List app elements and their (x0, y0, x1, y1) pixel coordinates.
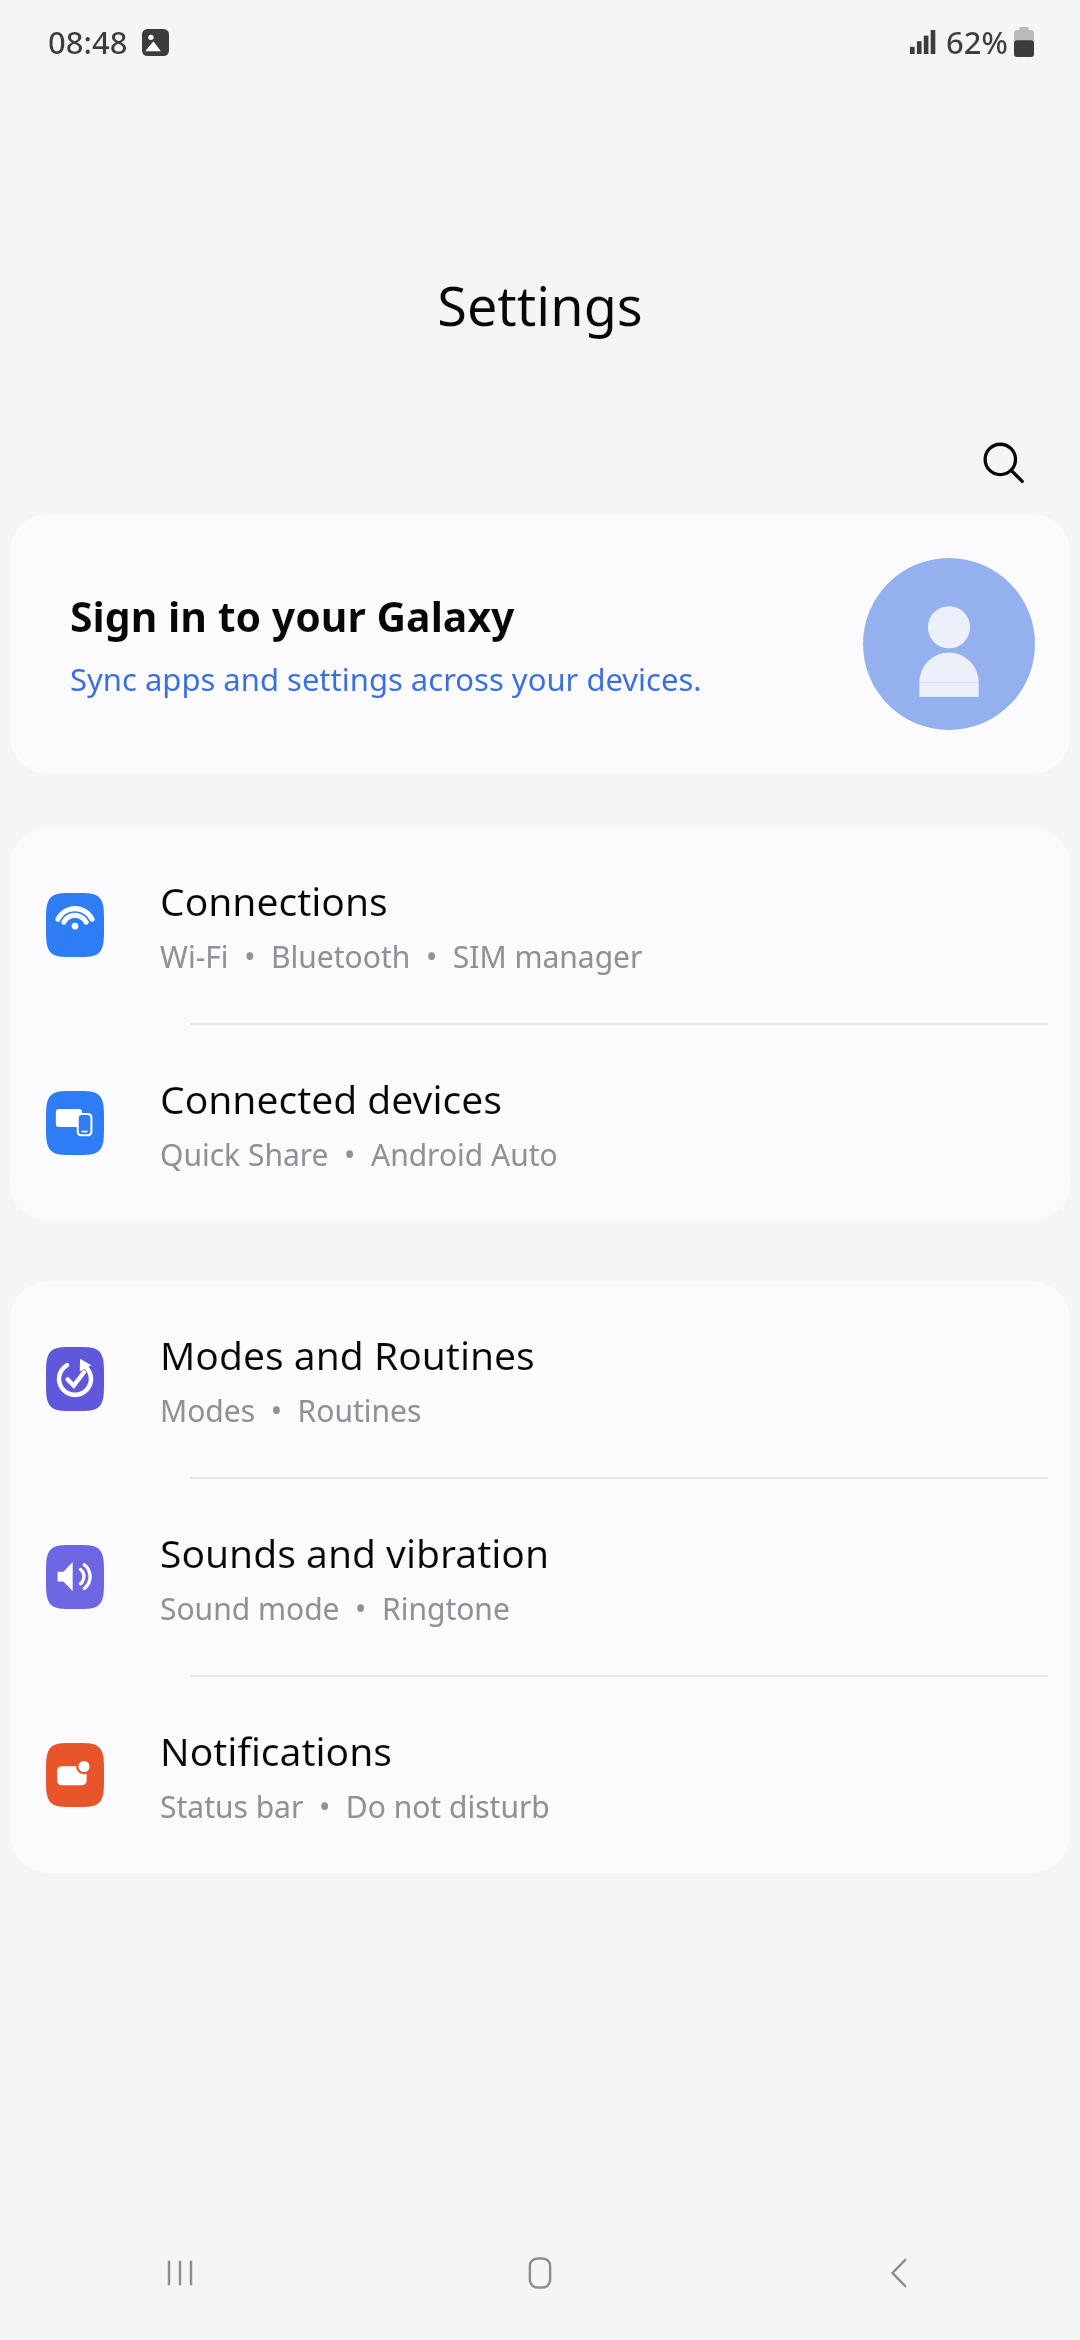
staticText: 62% (946, 21, 1008, 63)
staticText: Sync apps and settings across your devic… (70, 658, 702, 700)
staticText: Settings (0, 268, 1080, 342)
other: Notifications (46, 1743, 104, 1807)
staticText: Notifications (160, 1724, 392, 1777)
staticText: Sign in to your Galaxy (70, 588, 515, 644)
button[interactable]: Notifications (10, 1677, 1070, 1873)
staticText: 08:48 (48, 21, 128, 63)
button[interactable]: Back (720, 2205, 1080, 2340)
button[interactable]: Sounds and vibration (10, 1479, 1070, 1675)
staticText: Modes and Routines (160, 1328, 535, 1381)
staticText: Connections (160, 874, 388, 927)
staticText: Connected devices (160, 1072, 502, 1125)
other: Connected devices (46, 1091, 104, 1155)
staticText: Sounds and vibration (160, 1526, 550, 1579)
button[interactable]: Modes and Routines (10, 1281, 1070, 1477)
staticText: Status bar • Do not disturb (160, 1786, 550, 1827)
button[interactable]: Recents (0, 2205, 360, 2340)
staticText: Modes • Routines (160, 1390, 422, 1431)
button[interactable]: Sign in to your Galaxy (10, 514, 1070, 774)
button[interactable]: Search (976, 436, 1032, 492)
button[interactable]: Connected devices (10, 1025, 1070, 1221)
staticText: Sound mode • Ringtone (160, 1588, 510, 1629)
staticText: Wi-Fi • Bluetooth • SIM manager (160, 936, 643, 977)
other: Modes and Routines (46, 1347, 104, 1411)
button[interactable]: Home (360, 2205, 720, 2340)
staticText: Quick Share • Android Auto (160, 1134, 558, 1175)
button[interactable]: Wi-Fi (10, 827, 1070, 1023)
other: Wi-Fi (46, 893, 104, 957)
other: Sounds and vibration (46, 1545, 104, 1609)
